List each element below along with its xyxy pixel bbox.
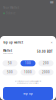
staticText: 50	[8, 61, 12, 65]
staticText: ✕	[50, 41, 52, 44]
staticText: 100	[25, 61, 31, 65]
staticText: balance: 50.00	[3, 52, 13, 54]
button[interactable]: 1000	[20, 69, 35, 75]
button[interactable]: Close	[49, 40, 54, 45]
staticText: and the top-up service conditions	[17, 82, 39, 84]
button[interactable]: Top up	[3, 87, 53, 100]
staticText: 50.00 BDT	[37, 50, 53, 53]
staticText: Top up wallet	[3, 41, 23, 44]
staticText: 200	[43, 61, 49, 65]
button[interactable]: 500	[2, 69, 17, 75]
staticText: Top up	[23, 92, 33, 95]
staticText: 2000	[42, 70, 50, 74]
staticText: Wallet	[3, 49, 12, 52]
button[interactable]: 200	[38, 60, 53, 66]
button[interactable]: 2000	[38, 69, 53, 75]
staticText: 1000	[24, 70, 32, 74]
staticText: Your Wallet	[3, 6, 19, 9]
button[interactable]: 100	[20, 60, 35, 66]
staticText: By continuing you agree to the wallet te…	[14, 80, 41, 82]
button[interactable]: 50	[2, 60, 17, 66]
staticText: ▮▮▮	[50, 0, 53, 3]
staticText: 500	[7, 70, 13, 74]
